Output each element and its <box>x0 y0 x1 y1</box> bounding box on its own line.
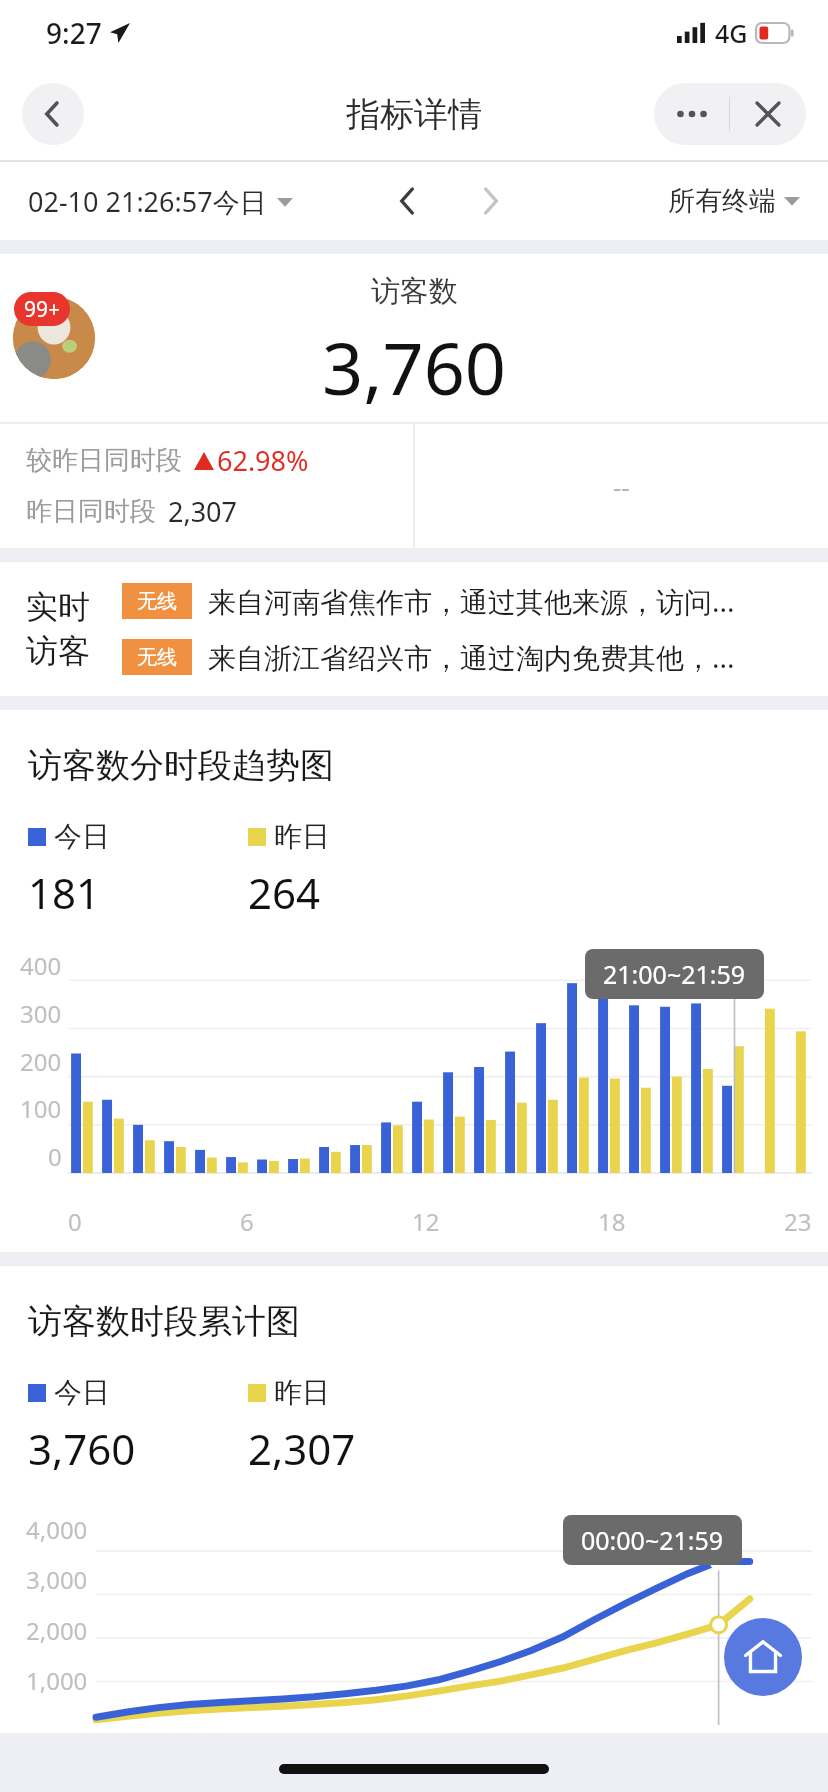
staticText: 昨日 <box>274 819 330 854</box>
staticText: 2,307 <box>248 1420 356 1477</box>
staticText: 100 <box>20 1092 62 1125</box>
staticText: 昨日 <box>274 1375 330 1410</box>
button[interactable]: 02-10 21:26:57今日 <box>28 183 293 220</box>
staticText: 来自浙江省绍兴市，通过淘内免费其他，... <box>208 638 735 676</box>
staticText: 指标详情 <box>346 93 482 136</box>
button[interactable]: Close <box>730 83 806 145</box>
staticText: 今日 <box>54 819 110 854</box>
staticText: 00:00~21:59 <box>581 1523 724 1557</box>
staticText: 访客数时段累计图 <box>28 1300 300 1343</box>
staticText: 99+ <box>24 295 61 324</box>
staticText: 18 <box>598 1205 626 1238</box>
staticText: 62.98% <box>217 442 309 479</box>
staticText: -- <box>613 469 630 504</box>
staticText: 所有终端 <box>668 184 776 218</box>
button[interactable]: Previous <box>382 175 434 227</box>
button[interactable]: 无线 <box>122 582 735 620</box>
staticText: 2,000 <box>26 1614 88 1647</box>
staticText: 181 <box>28 864 248 921</box>
staticText: 昨日同时段 <box>26 495 156 528</box>
staticText: 9:27 <box>46 14 102 52</box>
staticText: 23 <box>784 1205 812 1238</box>
staticText: 0 <box>48 1140 62 1173</box>
staticText: 300 <box>20 997 62 1030</box>
staticText: 4G <box>715 16 748 50</box>
staticText: 访客 <box>26 631 90 671</box>
staticText: 6 <box>240 1205 254 1238</box>
staticText: 无线 <box>137 589 177 614</box>
staticText: 今日 <box>54 1375 110 1410</box>
button[interactable]: Back <box>22 83 84 145</box>
button[interactable]: More <box>654 83 729 145</box>
staticText: 264 <box>248 864 321 921</box>
staticText: 21:00~21:59 <box>603 957 746 991</box>
staticText: 较昨日同时段 <box>26 444 182 477</box>
staticText: 访客数 <box>371 273 458 310</box>
staticText: 200 <box>20 1045 62 1078</box>
staticText: 02-10 21:26:57今日 <box>28 183 267 220</box>
staticText: 4,000 <box>26 1513 88 1546</box>
button[interactable]: Home <box>724 1618 802 1696</box>
staticText: 实时 <box>26 587 90 627</box>
button[interactable]: 所有终端 <box>668 184 800 218</box>
staticText: 2,307 <box>168 493 238 530</box>
staticText: 12 <box>412 1205 440 1238</box>
staticText: 访客数分时段趋势图 <box>28 744 334 787</box>
button[interactable]: 无线 <box>122 638 735 676</box>
staticText: 无线 <box>137 645 177 670</box>
button[interactable]: Next <box>464 175 516 227</box>
staticText: 1,000 <box>26 1664 88 1697</box>
staticText: 3,000 <box>26 1563 88 1596</box>
staticText: 0 <box>68 1205 82 1238</box>
staticText: 400 <box>20 949 62 982</box>
staticText: 3,760 <box>28 1420 248 1477</box>
staticText: 3,760 <box>322 318 507 416</box>
staticText: 来自河南省焦作市，通过其他来源，访问... <box>208 582 735 620</box>
button[interactable] <box>13 297 95 379</box>
